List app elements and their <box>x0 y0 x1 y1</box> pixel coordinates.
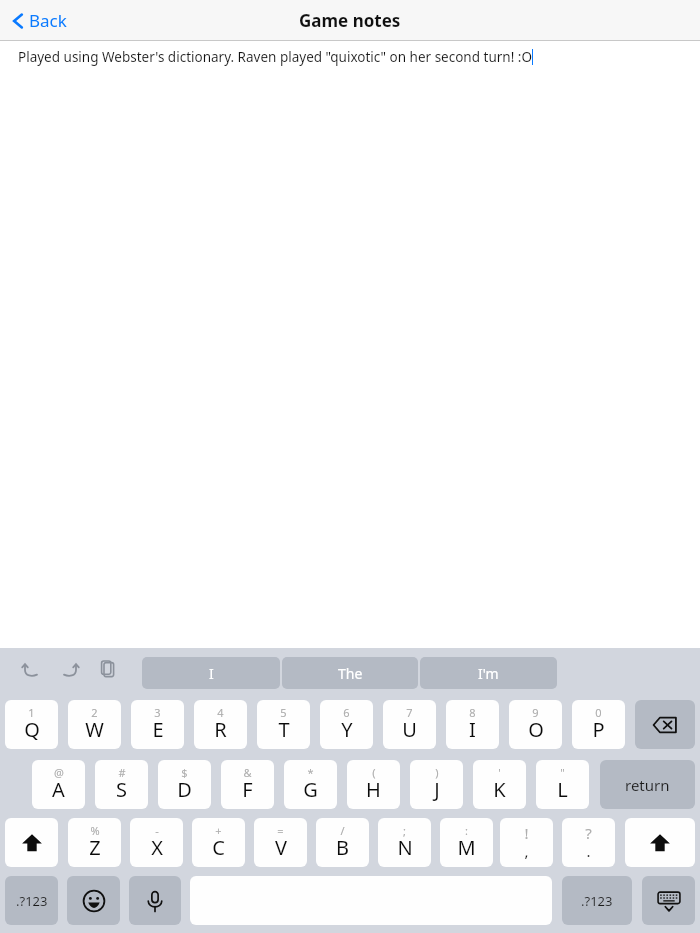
button[interactable]: Shift <box>5 818 58 867</box>
button[interactable]: 0 <box>572 700 625 749</box>
staticText: A <box>52 776 65 803</box>
button[interactable]: @ <box>32 760 85 809</box>
staticText: I <box>209 664 214 683</box>
button[interactable]: Back <box>10 5 69 36</box>
staticText: * <box>307 765 314 780</box>
button[interactable]: " <box>536 760 589 809</box>
staticText: 8 <box>469 705 476 720</box>
button[interactable]: .?123 <box>5 876 58 925</box>
staticText: L <box>557 776 568 803</box>
staticText: 9 <box>532 705 539 720</box>
button[interactable]: : <box>440 818 493 867</box>
staticText: R <box>214 716 227 743</box>
button[interactable]: # <box>95 760 148 809</box>
staticText: $ <box>181 765 188 780</box>
staticText: T <box>278 716 290 743</box>
staticText: . <box>586 841 591 861</box>
staticText: X <box>151 834 163 861</box>
staticText: # <box>118 765 126 780</box>
button[interactable]: ? <box>562 818 615 867</box>
button[interactable]: 1 <box>5 700 58 749</box>
staticText: @ <box>54 765 64 780</box>
staticText: ? <box>585 823 592 843</box>
button[interactable]: 9 <box>509 700 562 749</box>
staticText: B <box>336 834 349 861</box>
button[interactable]: Emoji <box>67 876 120 925</box>
staticText: .?123 <box>581 892 613 910</box>
staticText: P <box>592 716 605 743</box>
staticText: , <box>524 841 529 861</box>
staticText: return <box>625 775 670 795</box>
staticText: 6 <box>343 705 350 720</box>
button[interactable]: Backspace <box>635 700 695 749</box>
button[interactable]: The <box>282 657 418 689</box>
staticText: = <box>277 823 284 838</box>
button[interactable]: I'm <box>420 657 557 689</box>
button[interactable]: 3 <box>131 700 184 749</box>
staticText: .?123 <box>16 892 48 910</box>
staticText: S <box>116 776 127 803</box>
staticText: 0 <box>595 705 602 720</box>
button[interactable]: = <box>254 818 307 867</box>
staticText: E <box>152 716 164 743</box>
staticText: F <box>242 776 253 803</box>
button[interactable]: Paste <box>95 657 121 681</box>
button[interactable]: Undo <box>18 657 44 681</box>
staticText: ' <box>498 765 501 780</box>
button[interactable]: I <box>142 657 280 689</box>
button[interactable]: / <box>316 818 369 867</box>
staticText: & <box>243 765 252 780</box>
button[interactable]: return <box>600 760 695 809</box>
staticText: 2 <box>91 705 98 720</box>
staticText: V <box>275 834 287 861</box>
button[interactable]: * <box>284 760 337 809</box>
button[interactable]: + <box>192 818 245 867</box>
button[interactable]: ; <box>378 818 431 867</box>
staticText: : <box>465 823 468 838</box>
button[interactable]: & <box>221 760 274 809</box>
staticText: - <box>155 823 159 838</box>
staticText: Back <box>29 9 67 32</box>
staticText: U <box>402 716 417 743</box>
button[interactable]: 5 <box>257 700 310 749</box>
staticText: ; <box>403 823 406 838</box>
button[interactable]: Redo <box>57 657 83 681</box>
button[interactable]: ' <box>473 760 526 809</box>
button[interactable]: Dictation <box>129 876 181 925</box>
staticText: Y <box>341 716 353 743</box>
staticText: Game notes <box>299 9 401 32</box>
button[interactable]: Hide keyboard <box>642 876 695 925</box>
button[interactable]: Played using Webster's dictionary. Raven… <box>0 41 700 73</box>
staticText: % <box>90 823 100 838</box>
staticText: 4 <box>217 705 224 720</box>
staticText: O <box>528 716 544 743</box>
button[interactable]: 6 <box>320 700 373 749</box>
staticText: Played using Webster's dictionary. Raven… <box>18 48 532 66</box>
staticText: D <box>177 776 192 803</box>
staticText: ) <box>435 765 439 780</box>
button[interactable]: 2 <box>68 700 121 749</box>
staticText: 5 <box>280 705 287 720</box>
button[interactable]: .?123 <box>562 876 632 925</box>
button[interactable]: Shift <box>625 818 695 867</box>
staticText: N <box>397 834 413 861</box>
button[interactable]: ) <box>410 760 463 809</box>
button[interactable]: 7 <box>383 700 436 749</box>
button[interactable]: 4 <box>194 700 247 749</box>
staticText: C <box>212 834 225 861</box>
button[interactable]: % <box>68 818 121 867</box>
staticText: M <box>457 834 476 861</box>
button[interactable]: - <box>130 818 183 867</box>
staticText: Q <box>24 716 40 743</box>
button[interactable]: 8 <box>446 700 499 749</box>
staticText: I'm <box>478 664 499 683</box>
staticText: ! <box>524 823 529 843</box>
staticText: The <box>338 664 363 683</box>
staticText: G <box>303 776 318 803</box>
button[interactable]: $ <box>158 760 211 809</box>
staticText: W <box>85 716 104 743</box>
staticText: K <box>493 776 506 803</box>
button[interactable]: ! <box>500 818 553 867</box>
button[interactable]: ( <box>347 760 400 809</box>
